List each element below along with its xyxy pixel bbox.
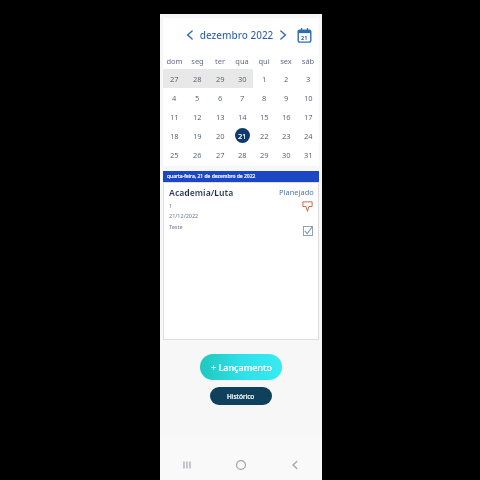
staticText: 21/12/2022 xyxy=(169,212,199,219)
staticText: 29 xyxy=(260,150,269,160)
button[interactable]: 11 xyxy=(163,107,186,126)
staticText: 21 xyxy=(301,34,308,41)
button[interactable]: 6 xyxy=(209,88,231,107)
staticText: 27 xyxy=(170,74,179,84)
staticText: 15 xyxy=(260,112,269,122)
staticText: dezembro 2022 xyxy=(199,28,274,42)
staticText: 28 xyxy=(238,150,247,160)
button[interactable]: 14 xyxy=(231,107,253,126)
button[interactable]: 4 xyxy=(163,88,186,107)
staticText: 6 xyxy=(218,93,223,103)
staticText: seg xyxy=(186,56,209,66)
staticText: 26 xyxy=(193,150,202,160)
staticText: 9 xyxy=(284,93,289,103)
button[interactable]: Início xyxy=(214,450,268,480)
button[interactable]: Voltar xyxy=(268,450,322,480)
button[interactable]: 16 xyxy=(275,107,297,126)
staticText: 1 xyxy=(169,202,173,209)
button[interactable]: 12 xyxy=(186,107,209,126)
button[interactable]: 30 xyxy=(275,145,297,164)
button[interactable]: Concluir xyxy=(302,225,314,237)
staticText: 14 xyxy=(238,112,247,122)
button[interactable]: 2 xyxy=(275,69,297,88)
button[interactable]: 23 xyxy=(275,126,297,145)
staticText: 19 xyxy=(193,131,202,141)
staticText: 30 xyxy=(238,74,247,84)
button[interactable]: 17 xyxy=(297,107,319,126)
button[interactable]: 29 xyxy=(209,69,231,88)
button[interactable]: 26 xyxy=(186,145,209,164)
button[interactable]: Recentes xyxy=(160,450,214,480)
staticText: quarta-feira, 21 de dezembro de 2022 xyxy=(167,173,256,180)
button[interactable]: 27 xyxy=(163,69,186,88)
staticText: 7 xyxy=(240,93,245,103)
button[interactable]: 1 xyxy=(253,69,275,88)
staticText: Planejado xyxy=(279,187,314,197)
staticText: 12 xyxy=(193,112,202,122)
button[interactable]: 25 xyxy=(163,145,186,164)
button[interactable]: Mês anterior xyxy=(181,26,199,44)
button[interactable]: 29 xyxy=(253,145,275,164)
button[interactable]: 8 xyxy=(253,88,275,107)
button[interactable]: 27 xyxy=(209,145,231,164)
staticText: 11 xyxy=(170,112,179,122)
staticText: sex xyxy=(275,56,297,66)
button[interactable]: Não realizado xyxy=(301,200,314,213)
staticText: 29 xyxy=(216,74,225,84)
staticText: 20 xyxy=(216,131,225,141)
button[interactable]: 3 xyxy=(297,69,319,88)
staticText: dom xyxy=(163,56,186,66)
button[interactable]: 13 xyxy=(209,107,231,126)
staticText: 27 xyxy=(216,150,225,160)
staticText: ter xyxy=(209,56,231,66)
staticText: 24 xyxy=(304,131,313,141)
button[interactable]: 21 xyxy=(231,126,253,145)
staticText: 2 xyxy=(284,74,289,84)
staticText: 16 xyxy=(282,112,291,122)
staticText: 30 xyxy=(282,150,291,160)
button[interactable]: 28 xyxy=(231,145,253,164)
staticText: 8 xyxy=(262,93,267,103)
button[interactable]: Escolher data xyxy=(294,25,314,45)
staticText: 18 xyxy=(170,131,179,141)
staticText: 5 xyxy=(195,93,200,103)
staticText: 23 xyxy=(282,131,291,141)
staticText: 3 xyxy=(306,74,311,84)
staticText: 13 xyxy=(216,112,225,122)
button[interactable]: + Lançamento xyxy=(200,354,282,380)
button[interactable]: 31 xyxy=(297,145,319,164)
staticText: Teste xyxy=(169,223,183,230)
button[interactable]: Academia/Luta xyxy=(163,182,319,340)
button[interactable]: Próximo mês xyxy=(274,26,292,44)
staticText: 22 xyxy=(260,131,269,141)
staticText: 1 xyxy=(262,74,267,84)
staticText: 25 xyxy=(170,150,179,160)
button[interactable]: 15 xyxy=(253,107,275,126)
staticText: Histórico xyxy=(227,392,255,401)
button[interactable]: Histórico xyxy=(210,387,272,405)
button[interactable]: 18 xyxy=(163,126,186,145)
staticText: qua xyxy=(231,56,253,66)
staticText: 4 xyxy=(172,93,177,103)
button[interactable]: 7 xyxy=(231,88,253,107)
staticText: sáb xyxy=(297,56,319,66)
button[interactable]: 19 xyxy=(186,126,209,145)
button[interactable]: 30 xyxy=(231,69,253,88)
staticText: Academia/Luta xyxy=(169,187,234,199)
staticText: 17 xyxy=(304,112,313,122)
button[interactable]: 20 xyxy=(209,126,231,145)
button[interactable]: 28 xyxy=(186,69,209,88)
staticText: 28 xyxy=(193,74,202,84)
button[interactable]: 24 xyxy=(297,126,319,145)
button[interactable]: 22 xyxy=(253,126,275,145)
button[interactable]: 5 xyxy=(186,88,209,107)
staticText: + Lançamento xyxy=(211,361,272,373)
staticText: 31 xyxy=(304,150,313,160)
staticText: qui xyxy=(253,56,275,66)
staticText: 21 xyxy=(238,131,247,141)
staticText: 10 xyxy=(304,93,313,103)
button[interactable]: 10 xyxy=(297,88,319,107)
button[interactable]: 9 xyxy=(275,88,297,107)
